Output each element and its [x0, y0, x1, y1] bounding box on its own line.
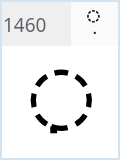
button[interactable]: Sync status	[71, 2, 118, 46]
staticText: 1460	[3, 12, 47, 38]
button[interactable]: 1460	[2, 2, 71, 46]
